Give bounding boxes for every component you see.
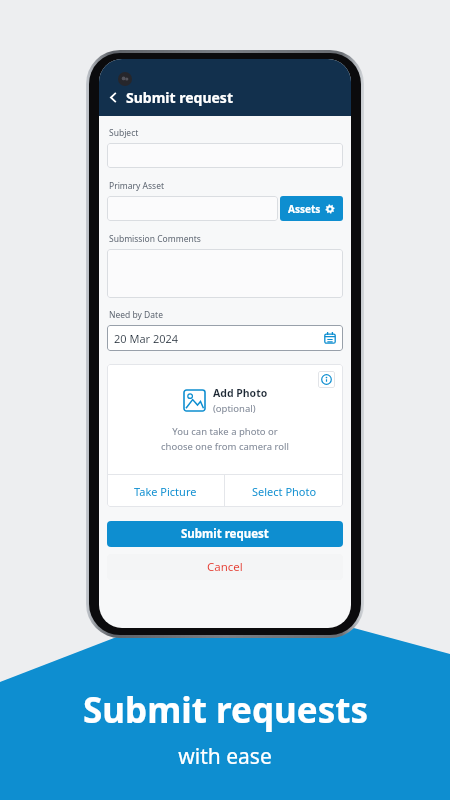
staticText: Take Picture (134, 484, 197, 499)
other: Back (107, 91, 120, 104)
staticText: Assets (288, 202, 321, 216)
staticText: Submit request (126, 88, 233, 107)
staticText: choose one from camera roll (161, 440, 289, 453)
button[interactable]: Back (104, 85, 236, 110)
button[interactable]: Assets (280, 196, 343, 221)
staticText: Cancel (207, 559, 243, 575)
button[interactable]: Info (318, 371, 335, 388)
button[interactable] (107, 249, 343, 298)
staticText: Submit requests (83, 686, 368, 734)
button[interactable]: Cancel (107, 554, 343, 580)
staticText: Submission Comments (109, 233, 201, 245)
staticText: with ease (178, 742, 272, 771)
button[interactable]: Take Picture (107, 475, 224, 507)
button[interactable]: 20 Mar 2024 (107, 325, 343, 351)
staticText: Subject (109, 127, 139, 139)
staticText: Primary Asset (109, 180, 165, 192)
staticText: You can take a photo or (172, 425, 278, 438)
staticText: Select Photo (252, 484, 317, 499)
button[interactable]: Select Photo (225, 475, 343, 507)
other: Pick date (324, 332, 336, 344)
staticText: (optional) (213, 402, 256, 415)
staticText: 20 Mar 2024 (114, 331, 179, 346)
button[interactable] (107, 196, 278, 221)
staticText: Add Photo (213, 386, 268, 400)
button[interactable] (107, 143, 343, 168)
staticText: Submit request (181, 526, 269, 542)
staticText: Need by Date (109, 309, 163, 321)
button[interactable]: Submit request (107, 521, 343, 547)
